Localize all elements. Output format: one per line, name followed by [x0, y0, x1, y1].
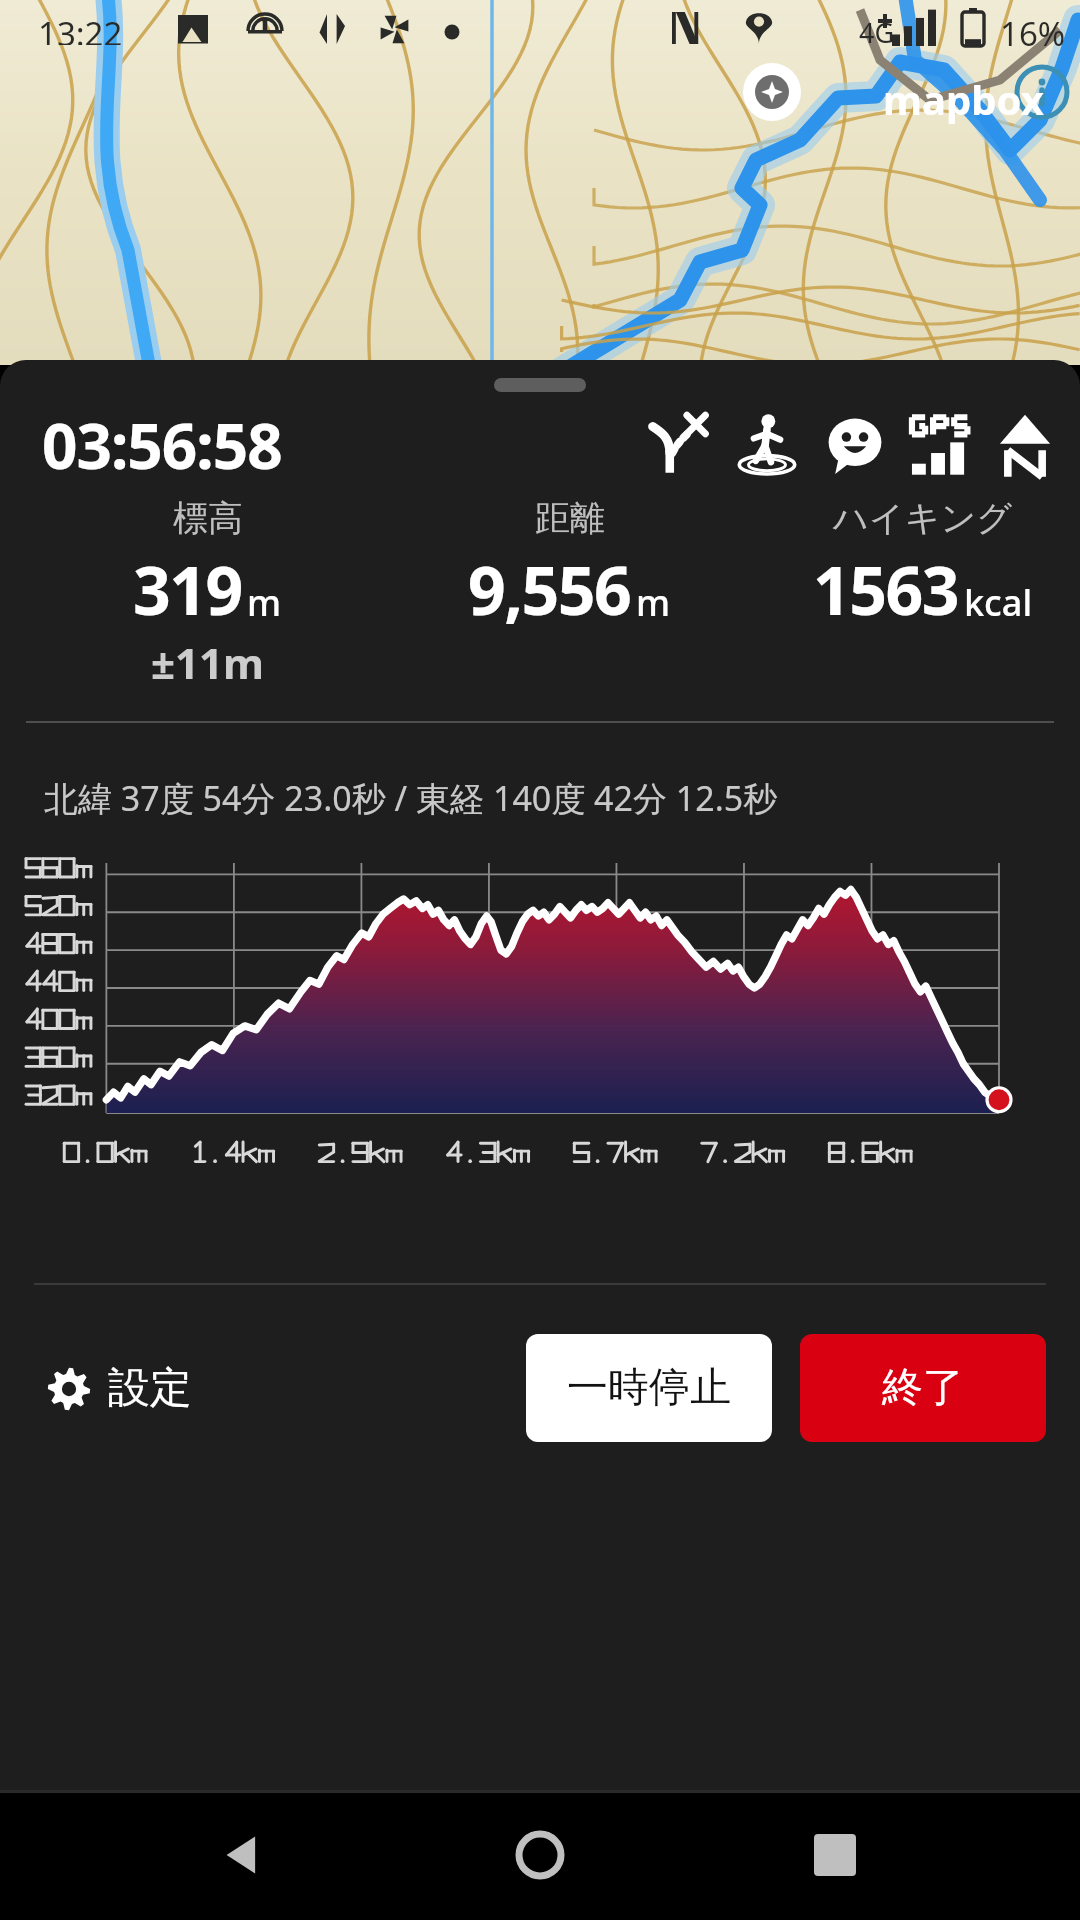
staticText: ハイキング [833, 496, 1013, 540]
staticText: mapbox [883, 72, 1044, 126]
staticText: 03:56:58 [42, 403, 282, 487]
button[interactable]: 距離 [373, 496, 756, 634]
staticText: 設定 [108, 1362, 192, 1415]
button[interactable]: Messages [822, 412, 888, 478]
button[interactable]: 標高 [0, 496, 373, 691]
staticText: 距離 [535, 496, 605, 540]
button[interactable]: Recent apps [785, 1805, 885, 1905]
staticText: 一時停止 [567, 1362, 731, 1414]
button[interactable]: Route off [646, 412, 712, 478]
staticText: 9,556 [468, 544, 631, 634]
staticText: 319 [133, 544, 242, 634]
staticText: kcal [964, 578, 1033, 627]
button[interactable]: Home [490, 1805, 590, 1905]
button[interactable]: GPS signal [908, 412, 974, 478]
button[interactable]: 設定 [34, 1352, 204, 1425]
staticText: 16% [1000, 11, 1066, 56]
staticText: 終了 [882, 1362, 964, 1414]
staticText: 標高 [173, 496, 243, 540]
button[interactable]: ハイキング [756, 496, 1080, 634]
staticText: m [636, 578, 671, 627]
button[interactable]: Walking [734, 412, 800, 478]
button[interactable]: 一時停止 [526, 1334, 772, 1442]
staticText: ±11m [151, 634, 265, 691]
staticText: m [247, 578, 282, 627]
staticText: 13:22 [38, 11, 123, 45]
button[interactable]: Back [195, 1805, 295, 1905]
staticText: 1563 [813, 544, 959, 634]
staticText: 4G [859, 14, 895, 51]
staticText: 北緯 37度 54分 23.0秒 / 東経 140度 42分 12.5秒 [44, 775, 778, 821]
button[interactable]: Compass north [992, 412, 1058, 478]
button[interactable]: 終了 [800, 1334, 1046, 1442]
button[interactable] [0, 843, 1080, 1243]
